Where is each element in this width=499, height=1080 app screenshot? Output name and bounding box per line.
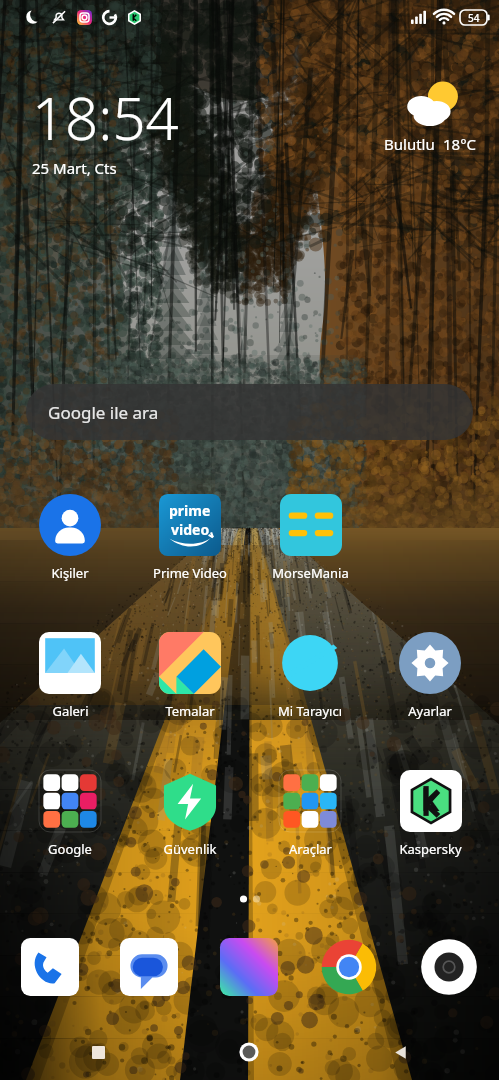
staticText: Bulutlu [384, 134, 435, 154]
staticText: 54 [468, 11, 480, 25]
staticText: Galeri [52, 702, 89, 720]
staticText: 25 Mart, Cts [32, 158, 117, 178]
button[interactable]: YOU [220, 938, 278, 996]
button[interactable]: prime [153, 494, 227, 582]
staticText: Prime Video [153, 564, 227, 582]
button[interactable]: Temalar [159, 632, 221, 720]
staticText: Ayarlar [408, 702, 452, 720]
staticText: prime [169, 501, 211, 520]
staticText: Güvenlik [163, 840, 217, 858]
button[interactable]: Google ile ara [26, 384, 473, 440]
button[interactable]: Mi Tarayıcı [278, 632, 342, 720]
staticText: Temalar [165, 702, 215, 720]
button[interactable]: Home [228, 1031, 270, 1073]
button[interactable]: Recents [77, 1031, 119, 1073]
button[interactable]: Camera [420, 938, 478, 996]
button[interactable]: Back [379, 1031, 421, 1073]
button[interactable]: Ayarlar [399, 632, 461, 720]
staticText: Mi Tarayıcı [278, 702, 342, 720]
staticText: 18°C [443, 134, 477, 154]
button[interactable]: MorseMania [272, 494, 349, 582]
staticText: video [171, 520, 210, 539]
button[interactable]: Galeri [39, 632, 101, 720]
staticText: Google ile ara [48, 401, 159, 424]
staticText: Kaspersky [399, 840, 462, 858]
staticText: MorseMania [272, 564, 349, 582]
staticText: Kişiler [51, 564, 89, 582]
button[interactable]: k [399, 770, 462, 858]
button[interactable]: Messages [120, 938, 178, 996]
button[interactable]: Araçlar [279, 770, 341, 858]
staticText: 18:54 [32, 78, 179, 157]
button[interactable]: Chrome [320, 938, 378, 996]
button[interactable]: Google [39, 770, 101, 858]
staticText: k [421, 779, 440, 820]
button[interactable]: Phone [21, 938, 79, 996]
button[interactable]: Güvenlik [159, 770, 221, 858]
staticText: Google [48, 840, 92, 858]
staticText: Araçlar [289, 840, 332, 858]
button[interactable]: Kişiler [39, 494, 101, 582]
